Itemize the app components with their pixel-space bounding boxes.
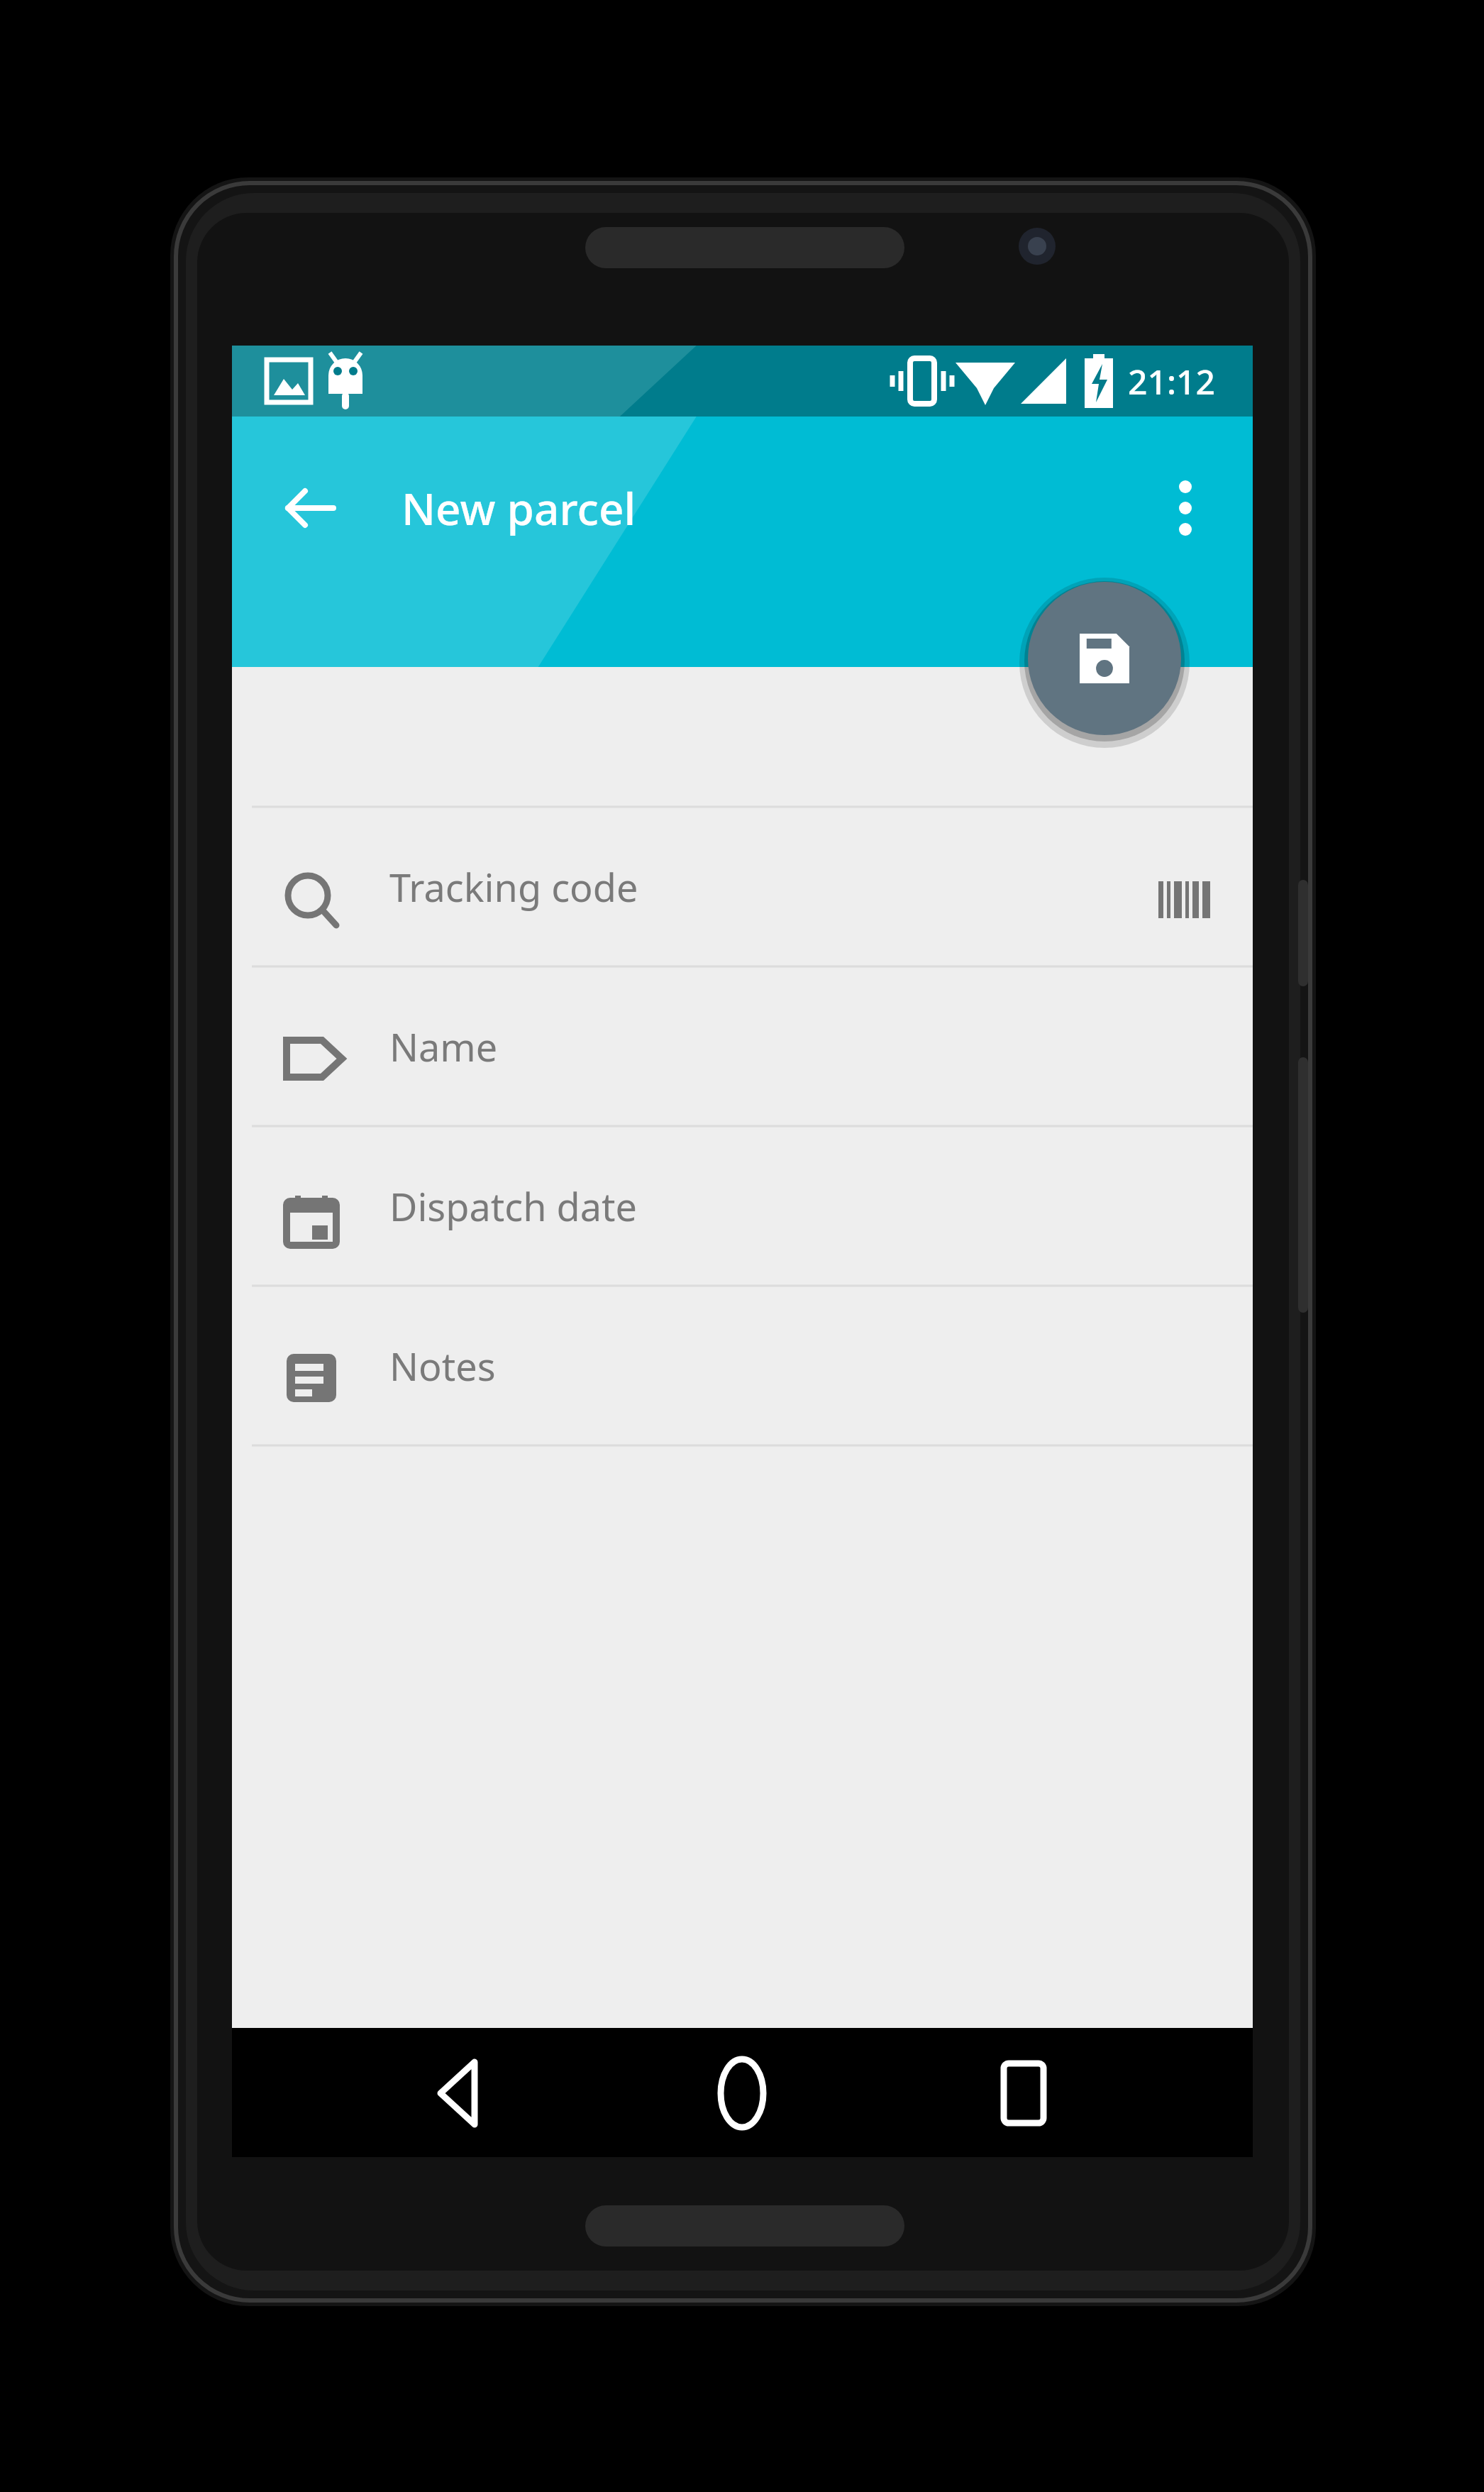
- button[interactable]: Tracking code: [232, 807, 1253, 966]
- button[interactable]: Scan barcode: [1128, 844, 1239, 955]
- staticText: 21:12: [1128, 358, 1215, 404]
- button[interactable]: Name: [232, 966, 1253, 1126]
- button[interactable]: Notes: [232, 1286, 1253, 1445]
- button[interactable]: Dispatch date: [232, 1126, 1253, 1286]
- button[interactable]: Back: [405, 2038, 513, 2146]
- staticText: Notes: [389, 1340, 496, 1392]
- button[interactable]: Recent apps: [970, 2038, 1078, 2146]
- button[interactable]: More options: [1137, 460, 1234, 556]
- button[interactable]: Save: [1028, 582, 1181, 735]
- staticText: New parcel: [402, 478, 636, 538]
- button[interactable]: Home: [688, 2038, 796, 2146]
- button[interactable]: Navigate up: [262, 460, 359, 556]
- staticText: Dispatch date: [389, 1180, 638, 1233]
- staticText: Name: [389, 1020, 498, 1073]
- staticText: Tracking code: [389, 861, 638, 913]
